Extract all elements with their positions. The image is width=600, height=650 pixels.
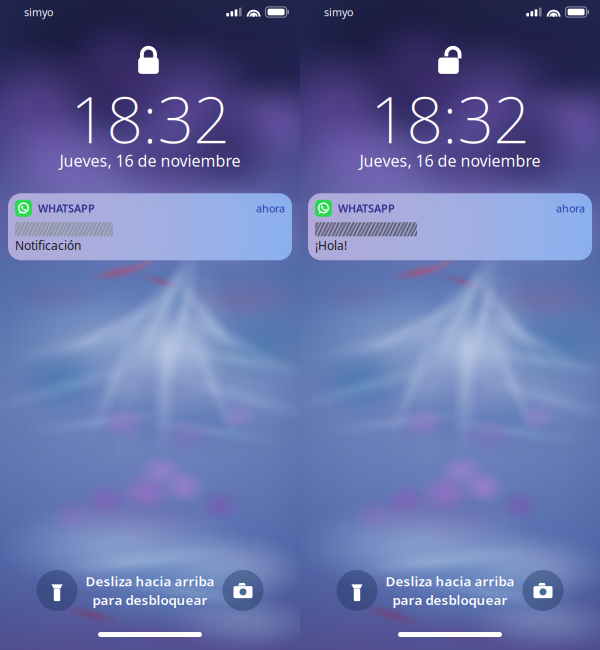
button[interactable]: Flashlight [336, 570, 377, 611]
button[interactable]: Camera [222, 570, 263, 611]
staticText: Desliza hacia arriba [385, 572, 514, 590]
staticText: Desliza hacia arriba [85, 572, 214, 590]
staticText: Jueves, 16 de noviembre [359, 150, 540, 171]
staticText: 18:32 [370, 76, 529, 161]
staticText: para desbloquear [92, 591, 207, 609]
button[interactable]: Camera [522, 570, 563, 611]
staticText: WHATSAPP [338, 201, 395, 215]
button[interactable]: WHATSAPP [308, 193, 592, 260]
button[interactable]: Flashlight [36, 570, 77, 611]
staticText: ahora [556, 201, 585, 215]
staticText: simyo [24, 5, 53, 19]
staticText: para desbloquear [392, 591, 507, 609]
staticText: ¡Hola! [315, 237, 347, 253]
staticText: Notificación [15, 237, 81, 253]
staticText: WHATSAPP [38, 201, 95, 215]
button[interactable]: WHATSAPP [8, 193, 292, 260]
staticText: 18:32 [70, 76, 229, 161]
staticText: Jueves, 16 de noviembre [59, 150, 240, 171]
staticText: ahora [256, 201, 285, 215]
staticText: simyo [324, 5, 353, 19]
